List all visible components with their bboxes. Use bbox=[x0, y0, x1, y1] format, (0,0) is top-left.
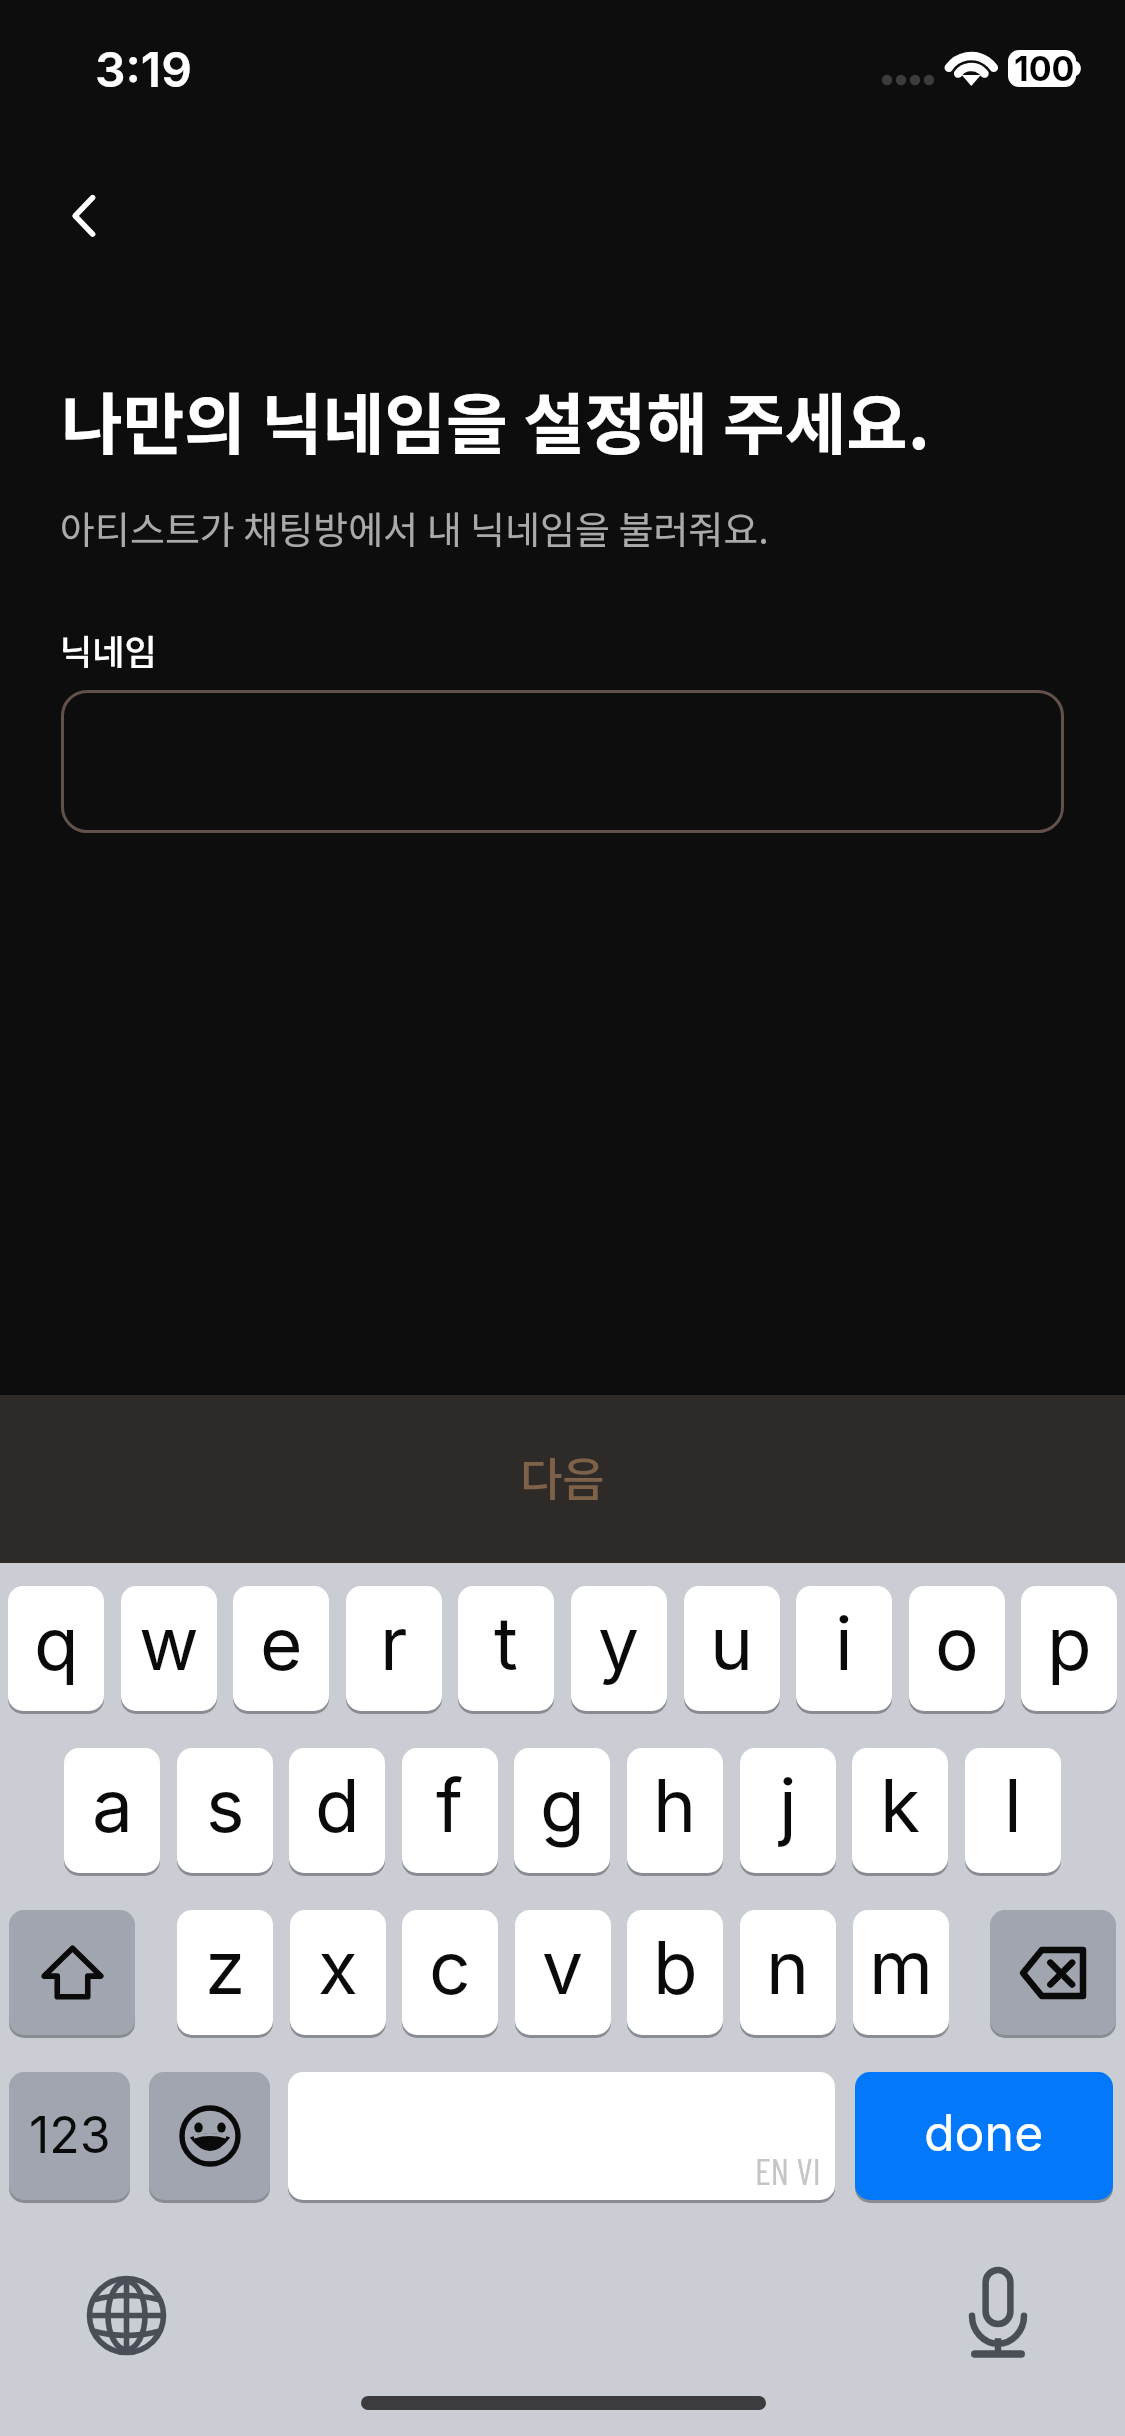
button[interactable]: s bbox=[177, 1748, 273, 1873]
button[interactable]: j bbox=[740, 1748, 836, 1873]
staticText: k bbox=[880, 1761, 921, 1849]
button[interactable]: 123 bbox=[9, 2072, 130, 2200]
staticText: v bbox=[542, 1923, 584, 2011]
button[interactable]: q bbox=[8, 1586, 104, 1711]
staticText: x bbox=[318, 1923, 358, 2011]
staticText: 닉네임 bbox=[60, 624, 157, 675]
button[interactable]: b bbox=[627, 1910, 723, 2035]
button[interactable]: m bbox=[853, 1910, 949, 2035]
staticText: 나만의 닉네임을 설정해 주세요. bbox=[61, 371, 930, 468]
staticText: q bbox=[34, 1599, 79, 1687]
staticText: 100 bbox=[1014, 48, 1075, 89]
button[interactable]: z bbox=[177, 1910, 273, 2035]
staticText: h bbox=[653, 1761, 697, 1849]
button[interactable] bbox=[61, 690, 1064, 833]
staticText: s bbox=[206, 1761, 245, 1849]
button[interactable]: o bbox=[909, 1586, 1005, 1711]
staticText: j bbox=[779, 1761, 797, 1849]
staticText: done bbox=[924, 2103, 1044, 2163]
button[interactable]: n bbox=[740, 1910, 836, 2035]
staticText: l bbox=[1004, 1761, 1022, 1849]
staticText: 아티스트가 채팅방에서 내 닉네임을 불러줘요. bbox=[60, 500, 769, 555]
staticText: 다음 bbox=[520, 1443, 605, 1510]
staticText: b bbox=[653, 1923, 698, 2011]
button[interactable]: x bbox=[290, 1910, 386, 2035]
button[interactable]: done bbox=[855, 2072, 1113, 2200]
button[interactable]: t bbox=[458, 1586, 554, 1711]
button[interactable]: Shift bbox=[9, 1910, 135, 2035]
button[interactable]: Change keyboard language bbox=[86, 2275, 167, 2356]
button[interactable]: 다음 bbox=[0, 1395, 1125, 1563]
button[interactable]: f bbox=[402, 1748, 498, 1873]
button[interactable]: y bbox=[571, 1586, 667, 1711]
staticText: n bbox=[766, 1923, 810, 2011]
staticText: EN VI bbox=[755, 2148, 821, 2192]
button[interactable]: Back bbox=[33, 176, 113, 256]
button[interactable]: u bbox=[684, 1586, 780, 1711]
staticText: 3:19 bbox=[95, 40, 192, 98]
staticText: r bbox=[380, 1599, 408, 1687]
button[interactable]: k bbox=[852, 1748, 948, 1873]
staticText: y bbox=[598, 1599, 640, 1687]
staticText: u bbox=[710, 1599, 754, 1687]
staticText: p bbox=[1047, 1599, 1092, 1687]
button[interactable]: c bbox=[402, 1910, 498, 2035]
button[interactable]: h bbox=[627, 1748, 723, 1873]
staticText: e bbox=[260, 1599, 303, 1687]
staticText: g bbox=[540, 1761, 585, 1849]
staticText: c bbox=[429, 1923, 471, 2011]
button[interactable]: g bbox=[514, 1748, 610, 1873]
button[interactable]: v bbox=[515, 1910, 611, 2035]
button[interactable]: d bbox=[289, 1748, 385, 1873]
button[interactable]: e bbox=[233, 1586, 329, 1711]
staticText: m bbox=[869, 1923, 933, 2011]
staticText: a bbox=[92, 1761, 133, 1849]
staticText: t bbox=[494, 1599, 518, 1687]
staticText: w bbox=[139, 1599, 199, 1687]
button[interactable]: w bbox=[121, 1586, 217, 1711]
button[interactable]: r bbox=[346, 1586, 442, 1711]
button[interactable]: a bbox=[64, 1748, 160, 1873]
button[interactable]: i bbox=[796, 1586, 892, 1711]
staticText: z bbox=[205, 1923, 246, 2011]
button[interactable]: p bbox=[1021, 1586, 1117, 1711]
button[interactable]: Emoji bbox=[149, 2072, 270, 2200]
staticText: i bbox=[835, 1599, 853, 1687]
staticText: f bbox=[436, 1761, 464, 1849]
staticText: 123 bbox=[29, 2105, 111, 2165]
button[interactable]: Dictation bbox=[958, 2268, 1038, 2358]
staticText: o bbox=[935, 1599, 979, 1687]
button[interactable]: Backspace bbox=[990, 1910, 1116, 2035]
staticText: d bbox=[315, 1761, 360, 1849]
button[interactable]: Space bbox=[288, 2072, 835, 2200]
button[interactable]: l bbox=[965, 1748, 1061, 1873]
